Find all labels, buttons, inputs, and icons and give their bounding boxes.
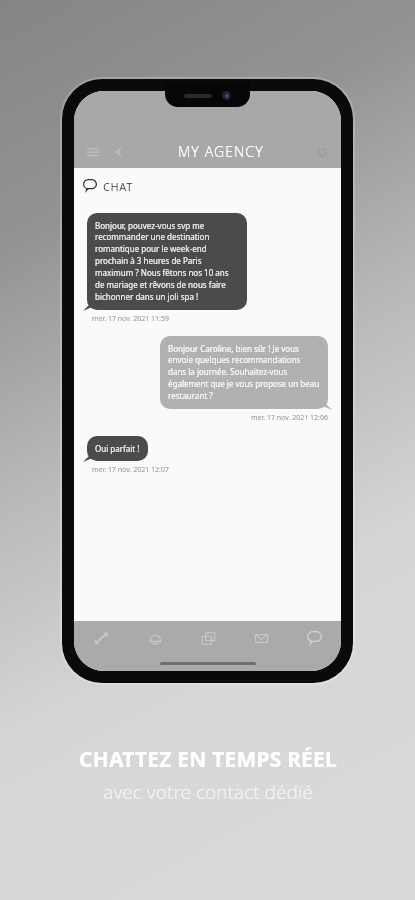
staticText: avec votre contact dédié	[103, 779, 313, 805]
button[interactable]: Documents	[182, 621, 235, 655]
button[interactable]: Menu	[80, 139, 106, 165]
button[interactable]: Ideas	[128, 621, 182, 655]
button[interactable]: Call	[74, 621, 128, 655]
staticText: MY AGENCY	[178, 142, 264, 161]
staticText: Bonjour, pouvez-vous svp me recommander …	[95, 220, 239, 303]
staticText: mer. 17 nov. 2021 11:59	[92, 314, 169, 324]
staticText: mer. 17 nov. 2021 12:06	[251, 413, 328, 423]
button[interactable]: Oui parfait !	[87, 436, 148, 461]
staticText: Oui parfait !	[95, 443, 140, 454]
button[interactable]: Chat	[288, 621, 341, 655]
button[interactable]: Bonjour Caroline, bien sûr ! Je vous env…	[160, 336, 328, 409]
button[interactable]: Bonjour, pouvez-vous svp me recommander …	[87, 213, 247, 310]
staticText: Bonjour Caroline, bien sûr ! Je vous env…	[168, 343, 320, 402]
staticText: mer. 17 nov. 2021 12:07	[92, 465, 169, 475]
staticText: CHATTEZ EN TEMPS RÉEL	[79, 745, 337, 774]
staticText: CHAT	[103, 179, 133, 194]
button[interactable]: Messages	[235, 621, 288, 655]
